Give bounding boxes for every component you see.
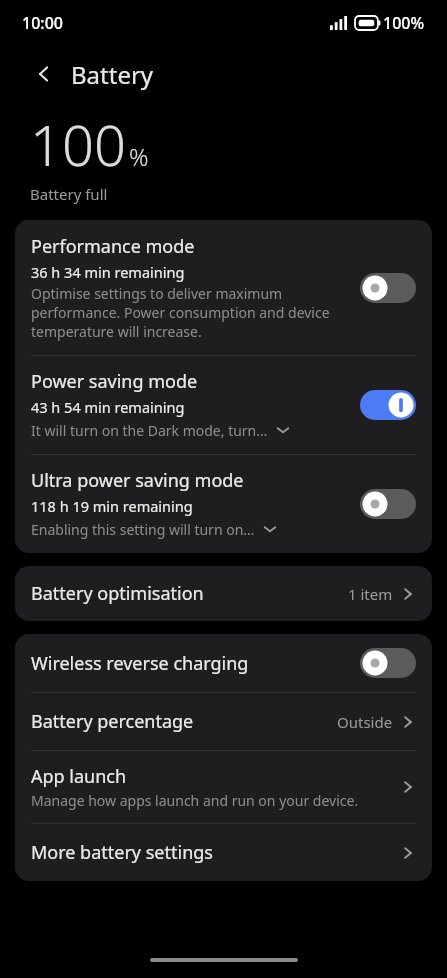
staticText: Wireless reverse charging: [31, 651, 360, 676]
staticText: It will turn on the Dark mode, turn…: [31, 421, 268, 440]
button[interactable]: Power saving mode: [360, 390, 416, 420]
staticText: Manage how apps launch and run on your d…: [31, 791, 359, 810]
button[interactable]: Battery percentage: [15, 693, 432, 750]
button[interactable]: Performance mode: [15, 220, 432, 355]
staticText: Optimise settings to deliver maximum per…: [31, 284, 350, 341]
button[interactable]: Back: [26, 56, 62, 92]
button[interactable]: Power saving mode: [15, 356, 432, 454]
staticText: Enabling this setting will turn on…: [31, 520, 255, 539]
button[interactable]: Battery optimisation: [15, 566, 432, 621]
button[interactable]: Performance mode: [360, 273, 416, 303]
staticText: More battery settings: [31, 840, 398, 865]
button[interactable]: App launch: [15, 751, 432, 823]
staticText: App launch: [31, 764, 127, 789]
staticText: 36 h 34 min remaining: [31, 262, 185, 282]
staticText: 43 h 54 min remaining: [31, 397, 185, 417]
staticText: 1 item: [348, 584, 393, 604]
staticText: Battery full: [30, 184, 108, 204]
staticText: 118 h 19 min remaining: [31, 496, 193, 516]
staticText: 100%: [383, 12, 425, 34]
staticText: Ultra power saving mode: [31, 468, 244, 493]
staticText: Battery percentage: [31, 709, 337, 734]
staticText: Outside: [337, 712, 393, 732]
button[interactable]: Wireless reverse charging: [360, 648, 416, 678]
staticText: Battery: [71, 58, 154, 91]
staticText: %: [129, 140, 149, 173]
button[interactable]: More battery settings: [15, 824, 432, 881]
button[interactable]: Ultra power saving mode: [360, 489, 416, 519]
staticText: Battery optimisation: [31, 581, 348, 606]
staticText: Performance mode: [31, 234, 195, 259]
button[interactable]: Ultra power saving mode: [15, 455, 432, 553]
button[interactable]: Wireless reverse charging: [15, 634, 432, 692]
staticText: 10:00: [22, 12, 63, 34]
staticText: 100: [30, 106, 126, 182]
staticText: Power saving mode: [31, 369, 198, 394]
